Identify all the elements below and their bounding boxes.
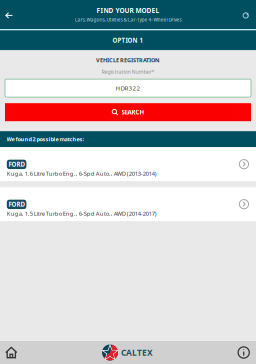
staticText: We found 2 possible matches: [6, 135, 84, 143]
button[interactable]: FORD [0, 147, 256, 181]
button[interactable]: CALTEX [102, 341, 153, 363]
button[interactable]: SEARCH [5, 103, 251, 121]
staticText: HDR322 [115, 84, 140, 92]
staticText: FORD [9, 200, 25, 209]
button[interactable]: Reset [237, 7, 254, 24]
button[interactable]: FORD [0, 187, 256, 221]
staticText: CALTEX [121, 347, 153, 358]
button[interactable]: Home [0, 341, 23, 364]
staticText: Kuga, 1.6 Litre Turbo Eng., 6-Spd Auto.,… [7, 170, 157, 177]
staticText: Registration Number* [101, 68, 154, 75]
staticText: OPTION 1 [112, 36, 143, 44]
staticText: Cars, Wagons, Utilities & Car-type 4-Whe… [74, 16, 181, 23]
staticText: VEHICLE REGISTRATION [96, 56, 160, 64]
staticText: Kuga, 1.5 Litre Turbo Eng., 6-Spd Auto.,… [7, 210, 157, 217]
button[interactable]: Information [232, 341, 255, 364]
staticText: SEARCH [121, 108, 144, 116]
button[interactable]: Back [0, 7, 18, 24]
staticText: FIND YOUR MODEL [96, 6, 159, 15]
staticText: FORD [9, 160, 25, 169]
